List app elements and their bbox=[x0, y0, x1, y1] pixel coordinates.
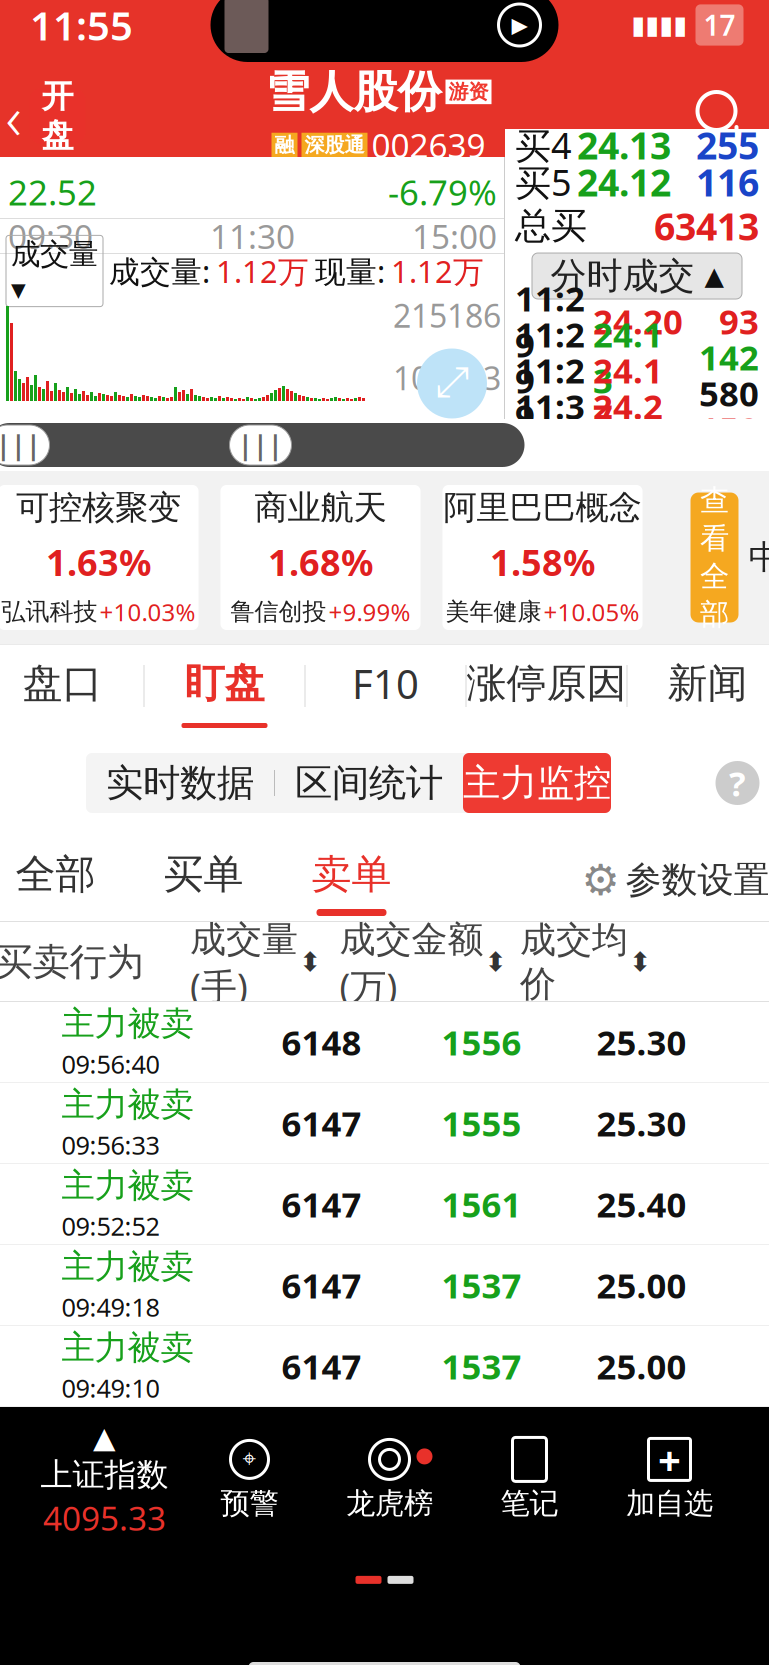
button[interactable]: 阿里巴巴概念 bbox=[442, 485, 642, 630]
button[interactable]: 商业航天 bbox=[220, 485, 420, 630]
staticText: 成交量 (手) bbox=[190, 914, 298, 1010]
staticText: 买卖行为 bbox=[0, 939, 143, 985]
staticText: 1.58% bbox=[490, 538, 595, 586]
staticText: 预警 bbox=[220, 1485, 278, 1521]
button[interactable]: 买单 bbox=[129, 838, 277, 922]
staticText: 成交量 ▾ bbox=[11, 236, 98, 306]
staticText: 142 bbox=[699, 334, 759, 380]
button[interactable]: 区间统计 bbox=[275, 753, 463, 813]
staticText: 25.00 bbox=[596, 1262, 686, 1308]
staticText: +9.99% bbox=[328, 596, 410, 628]
staticText: 融 bbox=[274, 133, 294, 157]
button[interactable]: 实时数据 bbox=[86, 753, 274, 813]
staticText: ? bbox=[729, 760, 746, 806]
staticText: 上证指数 bbox=[40, 1455, 168, 1495]
staticText: 总买 bbox=[515, 204, 587, 248]
button[interactable]: 分时成交 bbox=[532, 253, 742, 299]
staticText: 商业航天 bbox=[254, 487, 386, 528]
staticText: 成交均价 bbox=[520, 918, 628, 1006]
staticText: 全部 bbox=[15, 850, 95, 899]
staticText: 25.40 bbox=[596, 1181, 686, 1227]
staticText: 鲁信创投 bbox=[230, 597, 326, 627]
staticText: 主力被卖 bbox=[61, 1246, 193, 1287]
staticText: ▶ bbox=[511, 13, 527, 37]
staticText: 09:52:52 bbox=[61, 1209, 159, 1243]
staticText: 24.13 bbox=[593, 311, 663, 403]
staticText: 雪人股份 bbox=[265, 65, 441, 119]
button[interactable]: 盘口 bbox=[0, 644, 143, 728]
staticText: ⌖ bbox=[242, 1448, 256, 1471]
button[interactable]: 涨停原因 bbox=[466, 644, 626, 728]
button[interactable]: 成交均价 bbox=[510, 918, 660, 1006]
staticText: 11:55 bbox=[30, 0, 133, 51]
button[interactable]: 全部 bbox=[0, 838, 129, 922]
staticText: 1537 bbox=[441, 1262, 521, 1308]
staticText: ‹ bbox=[5, 75, 21, 157]
button[interactable]: ▲ bbox=[29, 1421, 179, 1540]
staticText: 主力被卖 bbox=[61, 1003, 193, 1044]
staticText: 002639 bbox=[371, 123, 485, 167]
staticText: 215186 bbox=[393, 294, 501, 336]
button[interactable]: 可控核聚变 bbox=[0, 485, 198, 630]
staticText: 可控核聚变 bbox=[16, 487, 181, 528]
button[interactable]: 龙虎榜 bbox=[319, 1439, 459, 1521]
staticText: 152 bbox=[699, 406, 759, 452]
staticText: 卖单 bbox=[311, 850, 391, 899]
button[interactable]: 成交量 (手) bbox=[175, 914, 335, 1010]
staticText: + bbox=[658, 1433, 681, 1486]
staticText: ⬍ bbox=[629, 947, 651, 977]
staticText: 涨停原因 bbox=[466, 659, 626, 708]
staticText: 4095.33 bbox=[43, 1496, 166, 1540]
staticText: 93 bbox=[719, 298, 759, 344]
staticText: 笔记 bbox=[500, 1485, 558, 1521]
staticText: 买单 bbox=[163, 850, 243, 899]
staticText: 龙虎榜 bbox=[346, 1485, 433, 1521]
staticText: 弘讯科技 bbox=[1, 597, 97, 627]
button[interactable]: 搜索 bbox=[671, 81, 769, 151]
staticText: -6.79% bbox=[388, 169, 497, 215]
button[interactable]: 帮助 bbox=[715, 761, 759, 805]
button[interactable]: ⌖ bbox=[179, 1439, 319, 1521]
button[interactable]: 盯盘 bbox=[144, 644, 304, 728]
staticText: 11:29 bbox=[515, 347, 585, 439]
staticText: 主力被卖 bbox=[61, 1327, 193, 1368]
staticText: 6147 bbox=[281, 1100, 361, 1146]
staticText: 分时成交 bbox=[550, 254, 694, 298]
staticText: ⬍ bbox=[484, 947, 506, 977]
staticText: +10.03% bbox=[99, 596, 195, 628]
staticText: 1.63% bbox=[46, 538, 151, 586]
staticText: 09:49:10 bbox=[61, 1371, 159, 1405]
staticText: 1561 bbox=[441, 1181, 521, 1227]
staticText: 成交量: bbox=[109, 251, 210, 291]
button[interactable]: 卖单 bbox=[277, 838, 425, 922]
staticText: ⚙ bbox=[581, 856, 619, 904]
staticText: 17 bbox=[703, 6, 735, 44]
staticText: 现量: bbox=[315, 251, 385, 291]
staticText: 盯盘 bbox=[184, 659, 264, 708]
staticText: 11:29 bbox=[515, 311, 585, 403]
staticText: 深股通 bbox=[304, 133, 364, 157]
staticText: 580 bbox=[699, 370, 759, 416]
button[interactable]: + bbox=[599, 1439, 739, 1521]
staticText: 主力监控 bbox=[463, 760, 611, 806]
staticText: 加自选 bbox=[626, 1485, 713, 1521]
staticText: ||| bbox=[0, 427, 41, 463]
staticText: ⬍ bbox=[299, 947, 321, 977]
button[interactable]: 返回 bbox=[0, 75, 85, 157]
staticText: 游资 bbox=[448, 80, 488, 104]
staticText: 11:29 bbox=[515, 275, 585, 367]
staticText: ▮▮▮▮ bbox=[631, 11, 687, 39]
button[interactable]: ⚙ bbox=[581, 845, 769, 915]
staticText: 6147 bbox=[281, 1262, 361, 1308]
staticText: 25.30 bbox=[596, 1100, 686, 1146]
staticText: 实时数据 bbox=[106, 760, 254, 806]
button[interactable]: 笔记 bbox=[459, 1439, 599, 1521]
button[interactable]: 新闻 bbox=[627, 644, 769, 728]
button[interactable]: F10 bbox=[305, 644, 465, 728]
staticText: 全 bbox=[700, 558, 729, 594]
staticText: 新闻 bbox=[667, 659, 747, 708]
button[interactable]: 查 bbox=[690, 492, 738, 622]
staticText: 买4 bbox=[515, 121, 572, 169]
button[interactable]: 成交金额 (万) bbox=[335, 914, 510, 1010]
button[interactable]: 主力监控 bbox=[463, 753, 611, 813]
